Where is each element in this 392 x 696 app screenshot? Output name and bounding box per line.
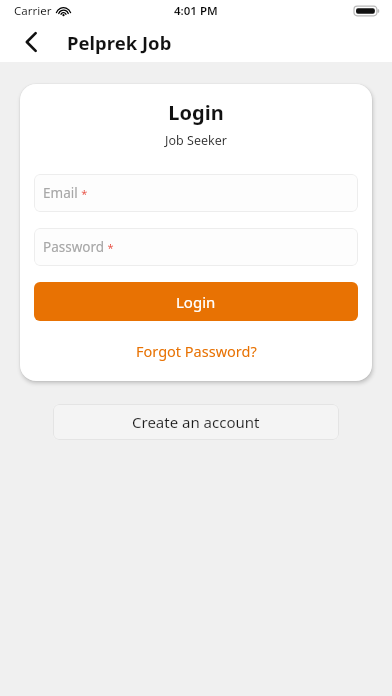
staticText: Email * [43,184,88,202]
button[interactable]: Email * [34,174,358,212]
staticText: Forgot Password? [136,341,257,361]
staticText: Login [168,99,224,126]
staticText: Job Seeker [165,132,227,149]
staticText: 4:01 PM [174,3,218,19]
button[interactable]: Password * [34,228,358,266]
button[interactable]: Create an account [53,404,339,440]
button[interactable]: Login [34,282,358,321]
staticText: Create an account [132,412,260,432]
button[interactable]: Back [14,25,48,59]
staticText: Login [176,292,216,312]
staticText: Carrier [14,3,52,19]
button[interactable]: Forgot Password? [126,338,267,364]
staticText: Pelprek Job [67,30,172,55]
staticText: Password * [43,238,114,256]
